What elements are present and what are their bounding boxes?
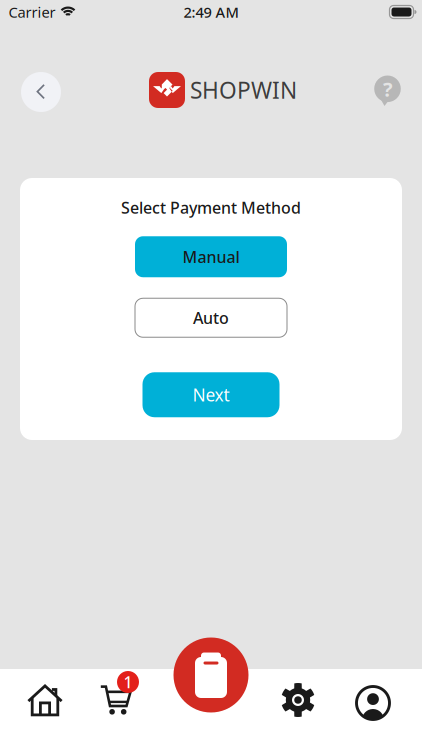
button[interactable]: Auto [135, 298, 287, 337]
staticText: Manual [182, 246, 239, 267]
staticText: Auto [193, 307, 229, 328]
button[interactable]: Cart [79, 667, 153, 733]
button[interactable]: Back [15, 66, 67, 118]
button[interactable]: Next [142, 372, 279, 417]
staticText: Next [192, 383, 229, 406]
staticText: SHOPWIN [190, 75, 297, 105]
staticText: ? [383, 76, 393, 102]
staticText: Select Payment Method [121, 197, 301, 218]
button[interactable]: Help [364, 68, 412, 116]
button[interactable]: Home [8, 667, 82, 733]
button[interactable]: Settings [261, 667, 335, 733]
staticText: 2:49 AM [183, 2, 238, 22]
button[interactable]: Orders [169, 633, 253, 717]
staticText: Carrier [8, 2, 55, 22]
staticText: 1 [123, 671, 132, 693]
button[interactable]: Manual [135, 236, 287, 277]
button[interactable]: Profile [336, 670, 410, 736]
